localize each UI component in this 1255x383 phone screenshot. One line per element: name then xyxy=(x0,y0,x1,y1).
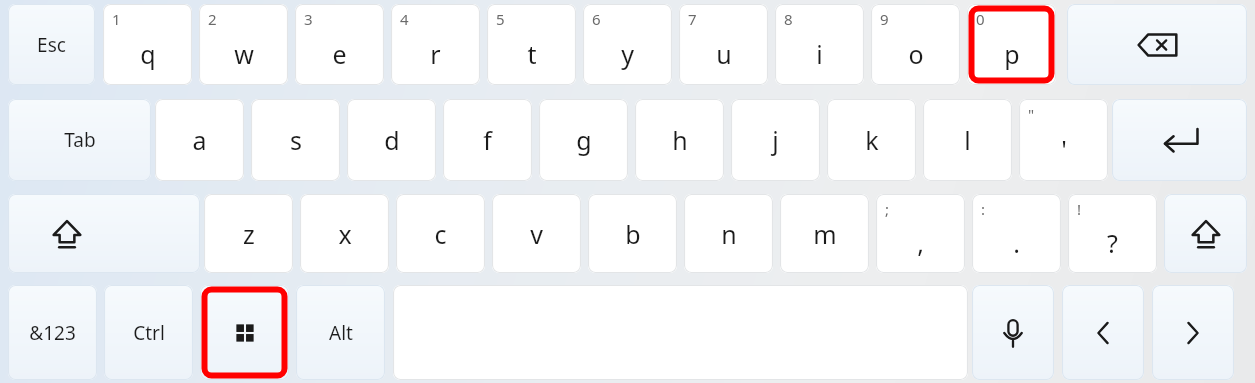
button[interactable]: Previous xyxy=(1062,285,1144,380)
staticText: 0 xyxy=(976,9,985,29)
button[interactable]: 4 xyxy=(391,4,480,85)
button[interactable]: 3 xyxy=(295,4,384,85)
staticText: Tab xyxy=(64,127,96,153)
button[interactable]: k xyxy=(827,99,916,181)
staticText: l xyxy=(964,123,971,157)
staticText: t xyxy=(527,37,537,71)
button[interactable]: " xyxy=(1019,99,1108,181)
button[interactable]: s xyxy=(251,99,340,181)
staticText: x xyxy=(338,217,352,251)
button[interactable]: g xyxy=(539,99,628,181)
staticText: : xyxy=(981,199,986,219)
button[interactable]: m xyxy=(780,194,869,273)
button[interactable]: h xyxy=(635,99,724,181)
staticText: n xyxy=(721,217,737,251)
button[interactable]: Esc xyxy=(8,4,95,85)
button[interactable]: Shift xyxy=(1164,194,1247,273)
staticText: e xyxy=(332,37,347,71)
staticText: ? xyxy=(1107,226,1118,260)
staticText: u xyxy=(716,37,732,71)
button[interactable]: ! xyxy=(1068,194,1157,273)
button[interactable]: Tab xyxy=(8,99,151,181)
staticText: m xyxy=(813,217,837,251)
button[interactable]: Windows xyxy=(200,285,289,380)
staticText: v xyxy=(530,217,543,251)
staticText: Esc xyxy=(37,32,66,58)
staticText: ! xyxy=(1077,199,1082,219)
staticText: 5 xyxy=(496,9,505,29)
staticText: Alt xyxy=(329,320,353,346)
button[interactable]: Microphone xyxy=(972,285,1054,380)
button[interactable]: 1 xyxy=(103,4,192,85)
button[interactable]: n xyxy=(684,194,773,273)
staticText: k xyxy=(865,123,879,157)
button[interactable]: Ctrl xyxy=(104,285,193,380)
button[interactable]: Enter xyxy=(1112,99,1247,181)
staticText: h xyxy=(672,123,688,157)
staticText: 3 xyxy=(304,9,313,29)
button[interactable]: b xyxy=(588,194,677,273)
button[interactable]: 0 xyxy=(967,4,1056,85)
staticText: o xyxy=(908,37,924,71)
button[interactable]: x xyxy=(300,194,389,273)
staticText: ' xyxy=(1061,132,1067,166)
button[interactable]: 2 xyxy=(199,4,288,85)
button[interactable]: 9 xyxy=(871,4,960,85)
staticText: &123 xyxy=(29,320,76,346)
staticText: , xyxy=(917,226,924,260)
staticText: 4 xyxy=(400,9,409,29)
staticText: f xyxy=(483,123,492,157)
staticText: 9 xyxy=(880,9,889,29)
button[interactable]: v xyxy=(492,194,581,273)
button[interactable]: j xyxy=(731,99,820,181)
button[interactable] xyxy=(393,285,968,380)
button[interactable]: d xyxy=(347,99,436,181)
staticText: j xyxy=(772,123,779,157)
button[interactable]: l xyxy=(923,99,1012,181)
button[interactable]: 7 xyxy=(679,4,768,85)
staticText: s xyxy=(290,123,302,157)
staticText: q xyxy=(140,37,156,71)
button[interactable]: ; xyxy=(876,194,965,273)
staticText: r xyxy=(430,37,441,71)
staticText: b xyxy=(625,217,641,251)
staticText: d xyxy=(384,123,400,157)
staticText: w xyxy=(234,37,254,71)
staticText: 8 xyxy=(784,9,793,29)
staticText: p xyxy=(1004,37,1020,71)
button[interactable]: Alt xyxy=(296,285,385,380)
staticText: 1 xyxy=(112,9,121,29)
staticText: z xyxy=(243,217,255,251)
staticText: " xyxy=(1028,104,1035,124)
staticText: . xyxy=(1013,226,1020,260)
staticText: a xyxy=(192,123,207,157)
button[interactable]: Next xyxy=(1152,285,1234,380)
button[interactable]: c xyxy=(396,194,485,273)
staticText: 2 xyxy=(208,9,217,29)
staticText: 7 xyxy=(688,9,697,29)
button[interactable]: Shift xyxy=(8,194,200,273)
button[interactable]: z xyxy=(204,194,293,273)
staticText: 6 xyxy=(592,9,601,29)
button[interactable]: : xyxy=(972,194,1061,273)
button[interactable]: &123 xyxy=(8,285,97,380)
button[interactable]: 6 xyxy=(583,4,672,85)
staticText: ; xyxy=(885,199,890,219)
button[interactable]: a xyxy=(155,99,244,181)
button[interactable]: 8 xyxy=(775,4,864,85)
staticText: c xyxy=(434,217,447,251)
staticText: i xyxy=(816,37,823,71)
button[interactable]: Backspace xyxy=(1067,4,1247,85)
button[interactable]: 5 xyxy=(487,4,576,85)
staticText: Ctrl xyxy=(133,320,165,346)
staticText: g xyxy=(576,123,592,157)
button[interactable]: f xyxy=(443,99,532,181)
staticText: y xyxy=(621,37,634,71)
